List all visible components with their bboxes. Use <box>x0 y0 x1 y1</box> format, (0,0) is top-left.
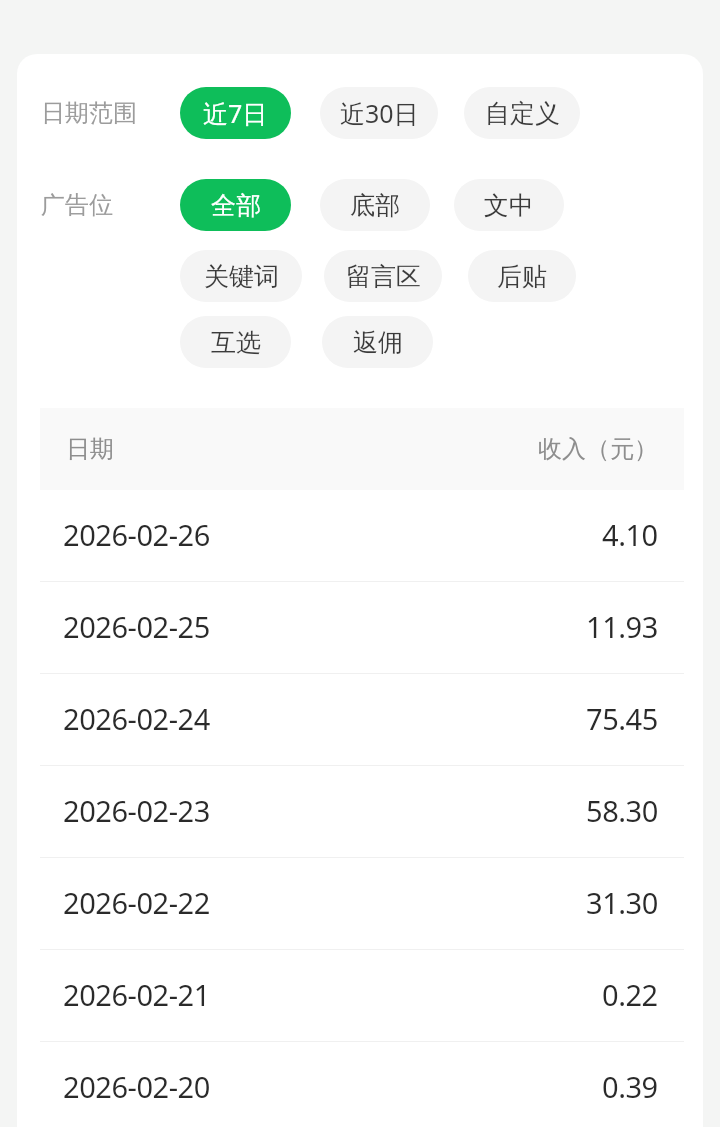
button[interactable]: 自定义 <box>464 87 580 139</box>
staticText: 2026-02-25 <box>63 607 210 646</box>
button[interactable]: 2026-02-25 <box>40 582 684 674</box>
button[interactable]: 近7日 <box>180 87 291 139</box>
staticText: 文中 <box>484 190 534 221</box>
button[interactable]: 全部 <box>180 179 291 231</box>
button[interactable]: 2026-02-24 <box>40 674 684 766</box>
button[interactable]: 留言区 <box>324 250 442 302</box>
staticText: 全部 <box>211 190 261 221</box>
staticText: 近7日 <box>203 96 268 130</box>
staticText: 2026-02-22 <box>63 883 210 922</box>
staticText: 2026-02-21 <box>63 975 210 1014</box>
staticText: 4.10 <box>602 515 658 554</box>
staticText: 底部 <box>350 190 400 221</box>
staticText: 0.39 <box>602 1067 658 1106</box>
staticText: 近30日 <box>340 96 419 130</box>
staticText: 日期范围 <box>41 98 137 128</box>
button[interactable]: 底部 <box>320 179 430 231</box>
button[interactable]: 2026-02-20 <box>40 1042 684 1127</box>
button[interactable]: 关键词 <box>180 250 302 302</box>
button[interactable]: 近30日 <box>320 87 438 139</box>
staticText: 广告位 <box>41 190 113 220</box>
button[interactable]: 2026-02-23 <box>40 766 684 858</box>
button[interactable]: 2026-02-21 <box>40 950 684 1042</box>
staticText: 自定义 <box>485 98 560 129</box>
button[interactable]: 后贴 <box>468 250 576 302</box>
staticText: 2026-02-26 <box>63 515 210 554</box>
staticText: 互选 <box>211 327 261 358</box>
staticText: 关键词 <box>204 261 279 292</box>
button[interactable]: 互选 <box>180 316 291 368</box>
staticText: 31.30 <box>586 883 658 922</box>
staticText: 75.45 <box>586 699 658 738</box>
button[interactable]: 2026-02-22 <box>40 858 684 950</box>
staticText: 留言区 <box>346 261 421 292</box>
staticText: 后贴 <box>497 261 547 292</box>
staticText: 0.22 <box>602 975 658 1014</box>
staticText: 58.30 <box>586 791 658 830</box>
staticText: 日期 <box>66 434 114 464</box>
staticText: 2026-02-23 <box>63 791 210 830</box>
staticText: 11.93 <box>586 607 658 646</box>
staticText: 2026-02-24 <box>63 699 210 738</box>
staticText: 2026-02-20 <box>63 1067 210 1106</box>
button[interactable]: 返佣 <box>322 316 433 368</box>
button[interactable]: 2026-02-26 <box>40 490 684 582</box>
staticText: 返佣 <box>353 327 403 358</box>
staticText: 收入（元） <box>538 434 658 464</box>
button[interactable]: 文中 <box>454 179 564 231</box>
